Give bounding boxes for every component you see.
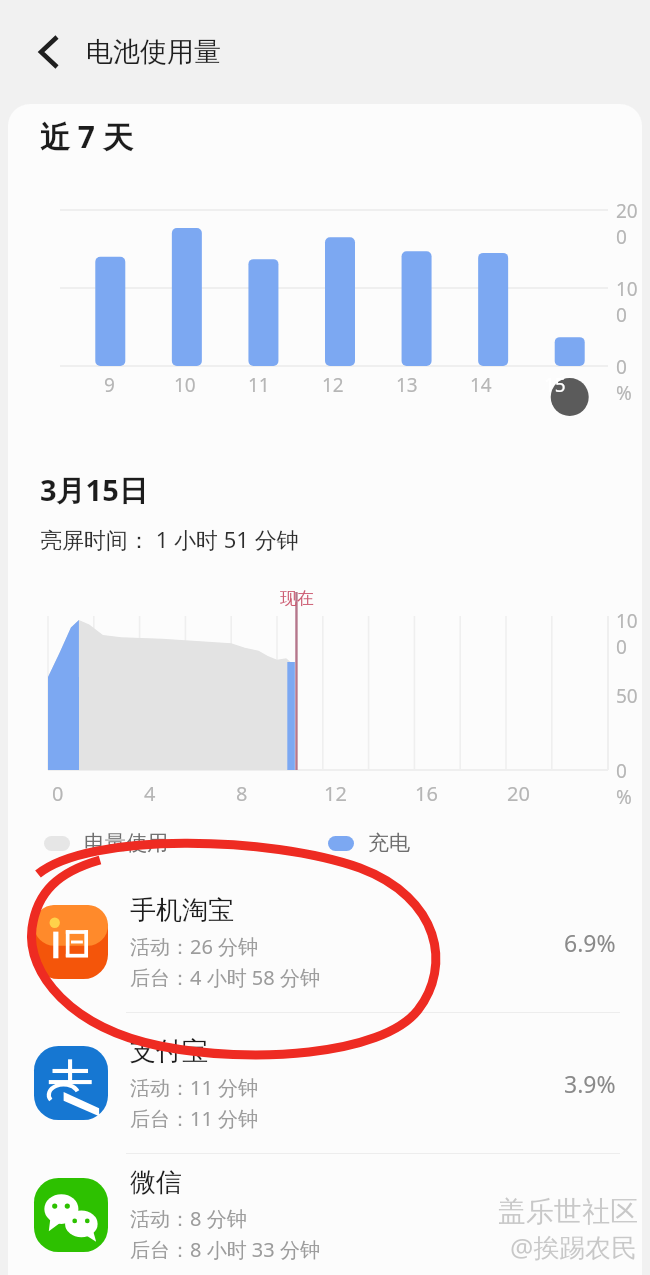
staticText: 微信 bbox=[130, 1166, 182, 1199]
staticText: 后台：11 分钟 bbox=[130, 1105, 259, 1132]
staticText: 3月15日 bbox=[40, 470, 148, 510]
staticText: 11 bbox=[248, 372, 270, 398]
staticText: 9 bbox=[104, 372, 115, 398]
staticText: 手机淘宝 bbox=[130, 894, 234, 927]
staticText: 后台：4 小时 58 分钟 bbox=[130, 964, 320, 991]
staticText: 活动：26 分钟 bbox=[130, 933, 259, 960]
staticText: 现在 bbox=[280, 588, 314, 609]
staticText: 电量使用 bbox=[84, 830, 168, 856]
button[interactable]: Back bbox=[20, 23, 78, 81]
staticText: 活动：8 分钟 bbox=[130, 1205, 247, 1232]
staticText: 0 bbox=[52, 780, 64, 807]
button[interactable]: 支付宝 bbox=[8, 1013, 642, 1153]
button[interactable]: 手机淘宝 bbox=[8, 872, 642, 1012]
staticText: 14 bbox=[470, 372, 492, 398]
staticText: 电池使用量 bbox=[86, 35, 221, 69]
button[interactable]: 微信 bbox=[8, 1154, 642, 1275]
staticText: 近 7 天 bbox=[40, 116, 133, 157]
staticText: @挨踢农民 bbox=[510, 1229, 638, 1265]
staticText: 亮屏时间： 1 小时 51 分钟 bbox=[40, 524, 299, 554]
staticText: 6.9% bbox=[564, 927, 616, 958]
staticText: 4 bbox=[144, 780, 156, 807]
staticText: 13 bbox=[396, 372, 418, 398]
staticText: 16 bbox=[415, 780, 438, 807]
staticText: 100 bbox=[616, 276, 642, 328]
staticText: 12 bbox=[322, 372, 344, 398]
staticText: 8 bbox=[236, 780, 248, 807]
staticText: 后台：8 小时 33 分钟 bbox=[130, 1236, 320, 1263]
staticText: 15 bbox=[544, 372, 566, 398]
staticText: 200 bbox=[616, 198, 642, 250]
staticText: 10 bbox=[174, 372, 196, 398]
staticText: 100 bbox=[616, 608, 642, 660]
staticText: 20 bbox=[507, 780, 530, 807]
staticText: 盖乐世社区 bbox=[498, 1194, 638, 1229]
staticText: 活动：11 分钟 bbox=[130, 1074, 259, 1101]
staticText: 3.9% bbox=[564, 1068, 616, 1099]
staticText: 50 bbox=[616, 683, 638, 709]
staticText: 支付宝 bbox=[130, 1035, 208, 1068]
staticText: 12 bbox=[324, 780, 347, 807]
staticText: 0% bbox=[616, 758, 642, 810]
staticText: 0% bbox=[616, 354, 642, 406]
staticText: 充电 bbox=[368, 830, 410, 856]
